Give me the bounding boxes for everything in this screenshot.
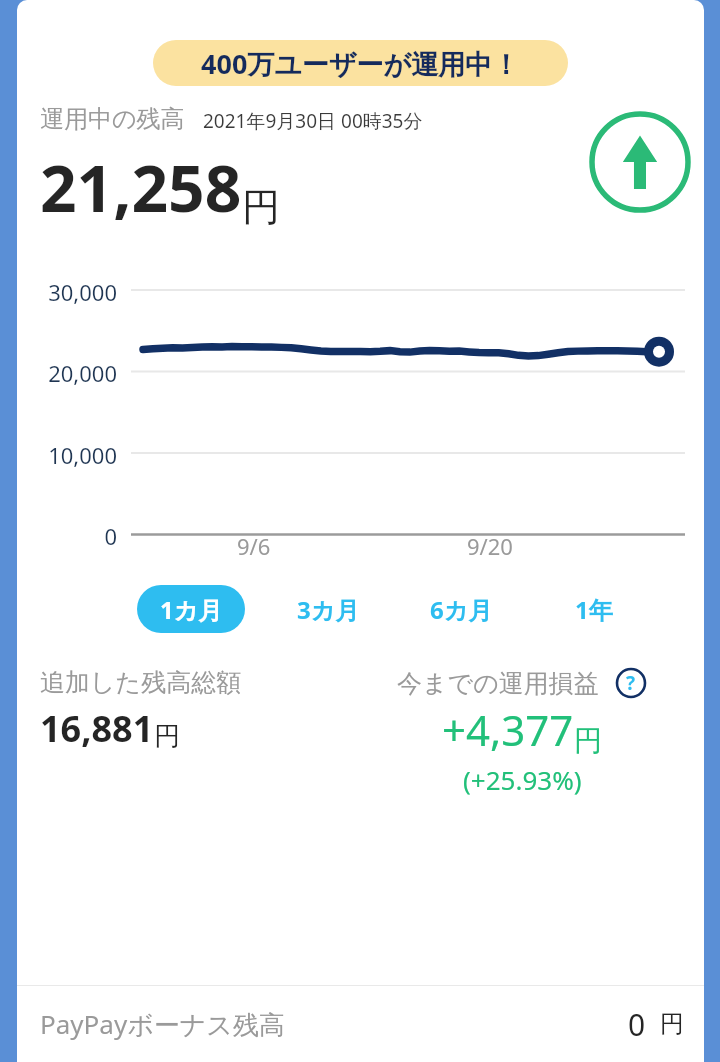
staticText: 30,000 <box>48 277 117 307</box>
staticText: 21,258 <box>40 144 242 231</box>
button[interactable]: ヘルプ <box>615 667 647 699</box>
staticText: 円 <box>242 183 280 231</box>
staticText: 円 <box>154 720 180 753</box>
button[interactable]: 400万ユーザーが運用中！ <box>153 40 568 86</box>
button[interactable]: 1カ月 <box>137 585 245 633</box>
staticText: 9/20 <box>467 531 513 561</box>
button[interactable]: 3カ月 <box>278 585 378 633</box>
button[interactable]: 6カ月 <box>411 585 511 633</box>
staticText: 0 <box>104 521 117 551</box>
staticText: 2021年9月30日 00時35分 <box>203 108 423 134</box>
staticText: +4,377 <box>442 701 574 758</box>
staticText: 6カ月 <box>430 593 493 626</box>
staticText: 円 <box>660 1009 684 1039</box>
staticText: (+25.93%) <box>463 762 582 797</box>
staticText: 9/6 <box>237 531 271 561</box>
staticText: 円 <box>574 723 602 758</box>
staticText: 16,881 <box>40 704 154 753</box>
button[interactable]: 1年 <box>544 585 644 633</box>
staticText: 今までの運用損益 <box>397 668 599 699</box>
button[interactable]: 運用中 <box>588 110 692 214</box>
staticText: 20,000 <box>48 358 117 388</box>
staticText: ? <box>626 670 636 696</box>
button[interactable]: PayPayボーナス残高 <box>17 986 704 1062</box>
staticText: 400万ユーザーが運用中！ <box>201 45 520 82</box>
staticText: 1年 <box>575 593 613 626</box>
staticText: 1カ月 <box>160 593 223 626</box>
staticText: 3カ月 <box>297 593 360 626</box>
staticText: 運用中の残高 <box>40 104 185 134</box>
staticText: 10,000 <box>48 440 117 470</box>
staticText: 追加した残高総額 <box>40 667 242 698</box>
staticText: 0 <box>628 1004 646 1045</box>
staticText: PayPayボーナス残高 <box>40 1006 285 1042</box>
